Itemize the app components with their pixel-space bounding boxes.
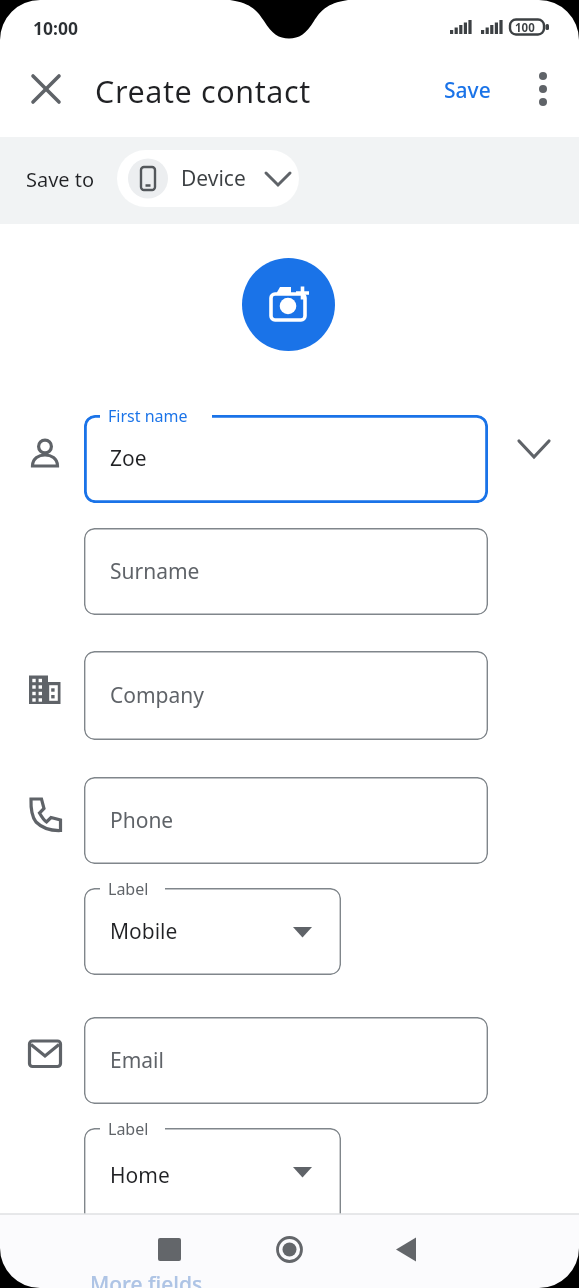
staticText: Create contact (95, 70, 311, 112)
staticText: Label (108, 878, 149, 900)
staticText: Company (110, 681, 204, 710)
button[interactable] (147, 1227, 192, 1272)
button[interactable]: Save (444, 76, 491, 105)
button[interactable] (26, 69, 66, 109)
button[interactable] (523, 69, 563, 109)
staticText: Mobile (110, 917, 178, 946)
staticText: 10:00 (33, 16, 78, 40)
staticText: Home (110, 1161, 170, 1190)
button[interactable] (242, 258, 335, 351)
staticText: Zoe (110, 444, 147, 473)
button[interactable]: Device (117, 150, 299, 207)
button[interactable]: More fields (90, 1270, 203, 1288)
button[interactable]: Company (84, 651, 488, 740)
staticText: Label (108, 1118, 149, 1140)
button[interactable] (267, 1227, 312, 1272)
button[interactable] (385, 1227, 430, 1272)
staticText: 100 (515, 20, 535, 36)
button[interactable]: Mobile (84, 888, 341, 975)
staticText: Surname (110, 557, 200, 586)
staticText: Save to (26, 166, 95, 193)
button[interactable]: Home (84, 1128, 341, 1224)
staticText: First name (108, 405, 188, 427)
button[interactable]: Email (84, 1017, 488, 1104)
staticText: Device (181, 164, 246, 193)
staticText: Phone (110, 806, 174, 835)
button[interactable]: Zoe (84, 415, 488, 503)
staticText: Email (110, 1046, 164, 1075)
button[interactable]: Surname (84, 528, 488, 615)
button[interactable]: Phone (84, 777, 488, 864)
